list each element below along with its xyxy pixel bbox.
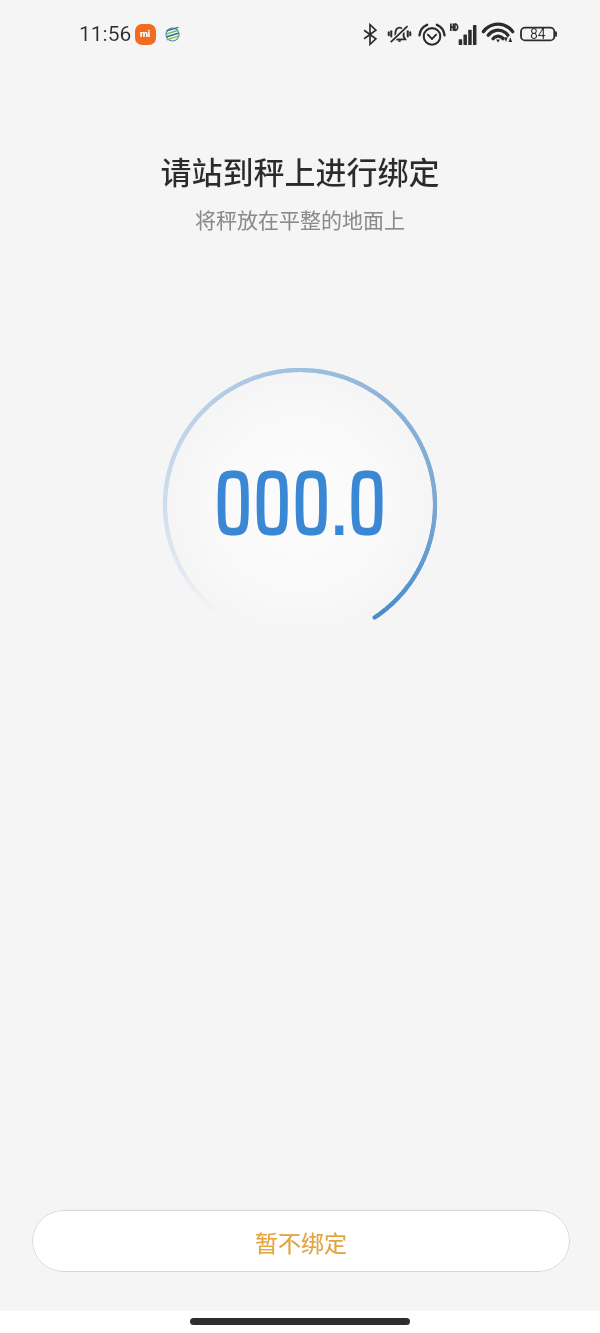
- staticText: mi: [140, 29, 151, 40]
- staticText: 11:56: [79, 22, 132, 47]
- button[interactable]: Home: [190, 1318, 410, 1325]
- staticText: 84: [530, 26, 546, 42]
- staticText: 请站到秤上进行绑定: [0, 148, 600, 193]
- staticText: 将秤放在平整的地面上: [0, 204, 600, 234]
- staticText: 000.0: [214, 431, 387, 576]
- button[interactable]: 暂不绑定: [32, 1210, 570, 1272]
- staticText: 暂不绑定: [255, 1225, 347, 1258]
